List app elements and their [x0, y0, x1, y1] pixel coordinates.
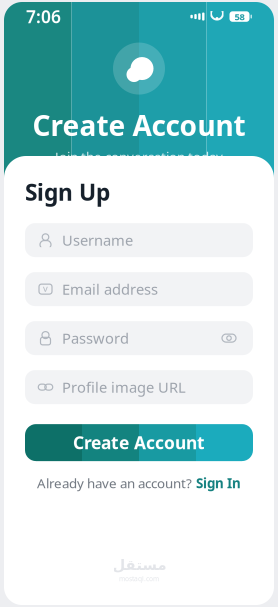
staticText: mostaql.com: [119, 574, 159, 583]
staticText: Password: [62, 328, 129, 348]
button[interactable]: Sign In: [196, 474, 241, 492]
staticText: 7:06: [26, 5, 61, 28]
staticText: v: [43, 282, 48, 294]
staticText: Sign Up: [25, 177, 110, 207]
button[interactable]: Create Account: [25, 424, 253, 461]
staticText: Create Account: [32, 107, 245, 144]
button[interactable]: Show password: [218, 327, 240, 349]
staticText: Sign In: [196, 474, 241, 492]
staticText: 58: [234, 10, 244, 23]
staticText: Profile image URL: [62, 377, 186, 397]
staticText: Email address: [62, 279, 158, 299]
staticText: Already have an account?: [37, 474, 192, 492]
staticText: Join the conversation today: [55, 148, 223, 165]
staticText: مستقل: [112, 556, 166, 573]
staticText: Username: [62, 230, 133, 250]
staticText: Create Account: [73, 431, 205, 454]
